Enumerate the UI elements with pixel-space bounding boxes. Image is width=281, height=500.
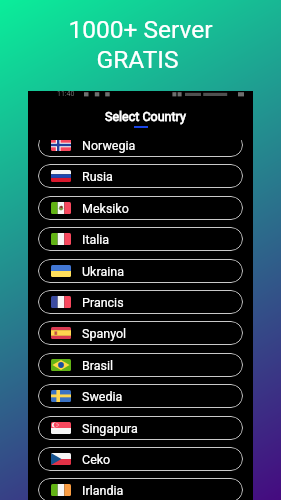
- staticText: Prancis: [82, 295, 124, 310]
- button[interactable]: Norwegia: [38, 140, 243, 157]
- staticText: 11:40: [57, 90, 75, 98]
- button[interactable]: Swedia: [38, 384, 243, 408]
- staticText: Spanyol: [82, 326, 127, 341]
- button[interactable]: Prancis: [38, 290, 243, 314]
- staticText: Singapura: [82, 421, 138, 436]
- staticText: Ukraina: [82, 264, 124, 279]
- button[interactable]: Singapura: [38, 416, 243, 440]
- staticText: Select Country: [105, 109, 186, 124]
- button[interactable]: Italia: [38, 227, 243, 251]
- staticText: Meksiko: [82, 201, 129, 216]
- button[interactable]: Spanyol: [38, 321, 243, 345]
- staticText: Italia: [82, 232, 110, 247]
- button[interactable]: Ukraina: [38, 259, 243, 283]
- button[interactable]: Irlandia: [38, 478, 243, 500]
- staticText: Ceko: [82, 452, 111, 467]
- staticText: 1000+ Server: [68, 15, 213, 44]
- staticText: Irlandia: [82, 483, 124, 498]
- staticText: GRATIS: [96, 45, 179, 74]
- staticText: Swedia: [82, 389, 123, 404]
- button[interactable]: Rusia: [38, 164, 243, 188]
- button[interactable]: Brasil: [38, 353, 243, 377]
- staticText: Brasil: [82, 358, 114, 373]
- staticText: Norwegia: [82, 140, 136, 153]
- button[interactable]: Ceko: [38, 447, 243, 471]
- staticText: Rusia: [82, 169, 113, 184]
- button[interactable]: Meksiko: [38, 196, 243, 220]
